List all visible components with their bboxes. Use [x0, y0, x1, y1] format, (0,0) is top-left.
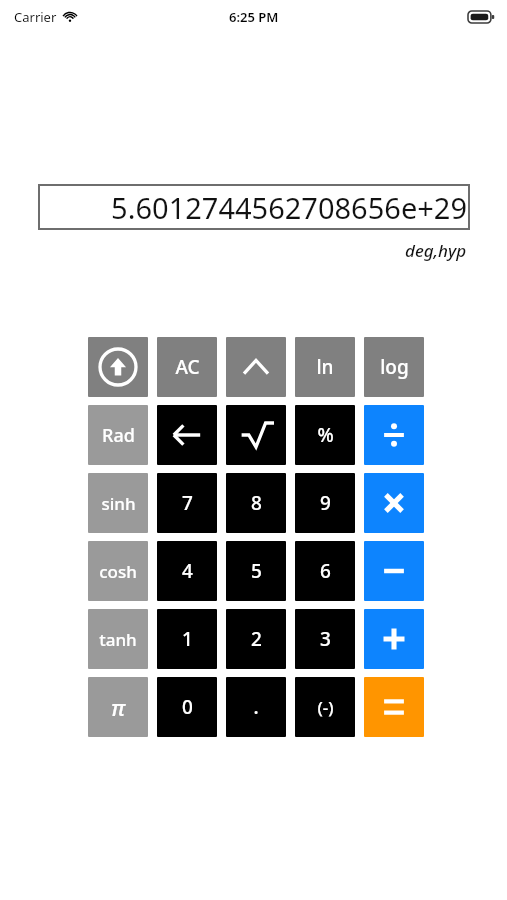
button[interactable]: Square root: [226, 405, 286, 465]
button[interactable]: 0: [157, 677, 217, 737]
staticText: Carrier: [14, 8, 57, 26]
staticText: .: [253, 694, 259, 720]
staticText: sinh: [101, 492, 136, 515]
button[interactable]: .: [226, 677, 286, 737]
button[interactable]: tanh: [88, 609, 148, 669]
button[interactable]: Multiply: [364, 473, 424, 533]
staticText: log: [380, 354, 409, 380]
staticText: ln: [316, 354, 334, 380]
staticText: 2: [251, 626, 262, 652]
button[interactable]: Minus: [364, 541, 424, 601]
button[interactable]: %: [295, 405, 355, 465]
staticText: 6:25 PM: [229, 8, 279, 26]
staticText: 9: [320, 490, 331, 516]
button[interactable]: 3: [295, 609, 355, 669]
staticText: 6: [320, 558, 331, 584]
staticText: 4: [182, 558, 193, 584]
button[interactable]: cosh: [88, 541, 148, 601]
button[interactable]: 1: [157, 609, 217, 669]
button[interactable]: Delete: [157, 405, 217, 465]
button[interactable]: 5: [226, 541, 286, 601]
button[interactable]: π: [88, 677, 148, 737]
staticText: 0: [182, 694, 193, 720]
button[interactable]: 4: [157, 541, 217, 601]
button[interactable]: Plus: [364, 609, 424, 669]
staticText: (-): [317, 696, 334, 719]
staticText: tanh: [99, 628, 137, 651]
button[interactable]: 6: [295, 541, 355, 601]
button[interactable]: ln: [295, 337, 355, 397]
button[interactable]: sinh: [88, 473, 148, 533]
button[interactable]: 8: [226, 473, 286, 533]
staticText: Rad: [102, 423, 135, 448]
staticText: 3: [320, 626, 331, 652]
button[interactable]: AC: [157, 337, 217, 397]
button[interactable]: log: [364, 337, 424, 397]
staticText: deg,hyp: [405, 239, 467, 262]
button[interactable]: 2: [226, 609, 286, 669]
button[interactable]: (-): [295, 677, 355, 737]
button[interactable]: 9: [295, 473, 355, 533]
staticText: π: [111, 692, 125, 722]
staticText: 5: [251, 558, 262, 584]
staticText: 1: [182, 626, 193, 652]
staticText: 7: [182, 490, 193, 516]
button[interactable]: Power: [226, 337, 286, 397]
button[interactable]: Second function: [88, 337, 148, 397]
button[interactable]: 5.6012744562708656e+29: [38, 184, 470, 230]
button[interactable]: Rad: [88, 405, 148, 465]
staticText: 8: [251, 490, 262, 516]
staticText: 5.6012744562708656e+29: [111, 188, 467, 227]
staticText: cosh: [99, 560, 137, 583]
button[interactable]: 7: [157, 473, 217, 533]
button[interactable]: Equals: [364, 677, 424, 737]
button[interactable]: Divide: [364, 405, 424, 465]
staticText: AC: [175, 354, 200, 380]
staticText: %: [317, 422, 334, 448]
